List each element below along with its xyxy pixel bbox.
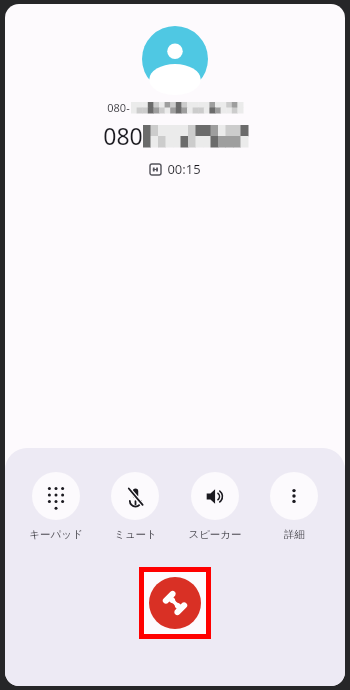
staticText: キーパッド	[29, 528, 83, 541]
staticText: ミュート	[114, 528, 157, 541]
staticText: 080-	[107, 100, 130, 115]
staticText: 00:15	[167, 160, 201, 178]
button[interactable]: スピーカー	[177, 470, 253, 543]
button[interactable]: キーパッド	[18, 470, 94, 543]
button[interactable]: 詳細	[256, 470, 332, 543]
button[interactable]: ミュート	[97, 470, 173, 543]
button[interactable]: 通話終了	[149, 577, 201, 629]
staticText: スピーカー	[188, 528, 242, 541]
staticText: 詳細	[284, 528, 305, 541]
staticText: 080	[103, 120, 143, 151]
